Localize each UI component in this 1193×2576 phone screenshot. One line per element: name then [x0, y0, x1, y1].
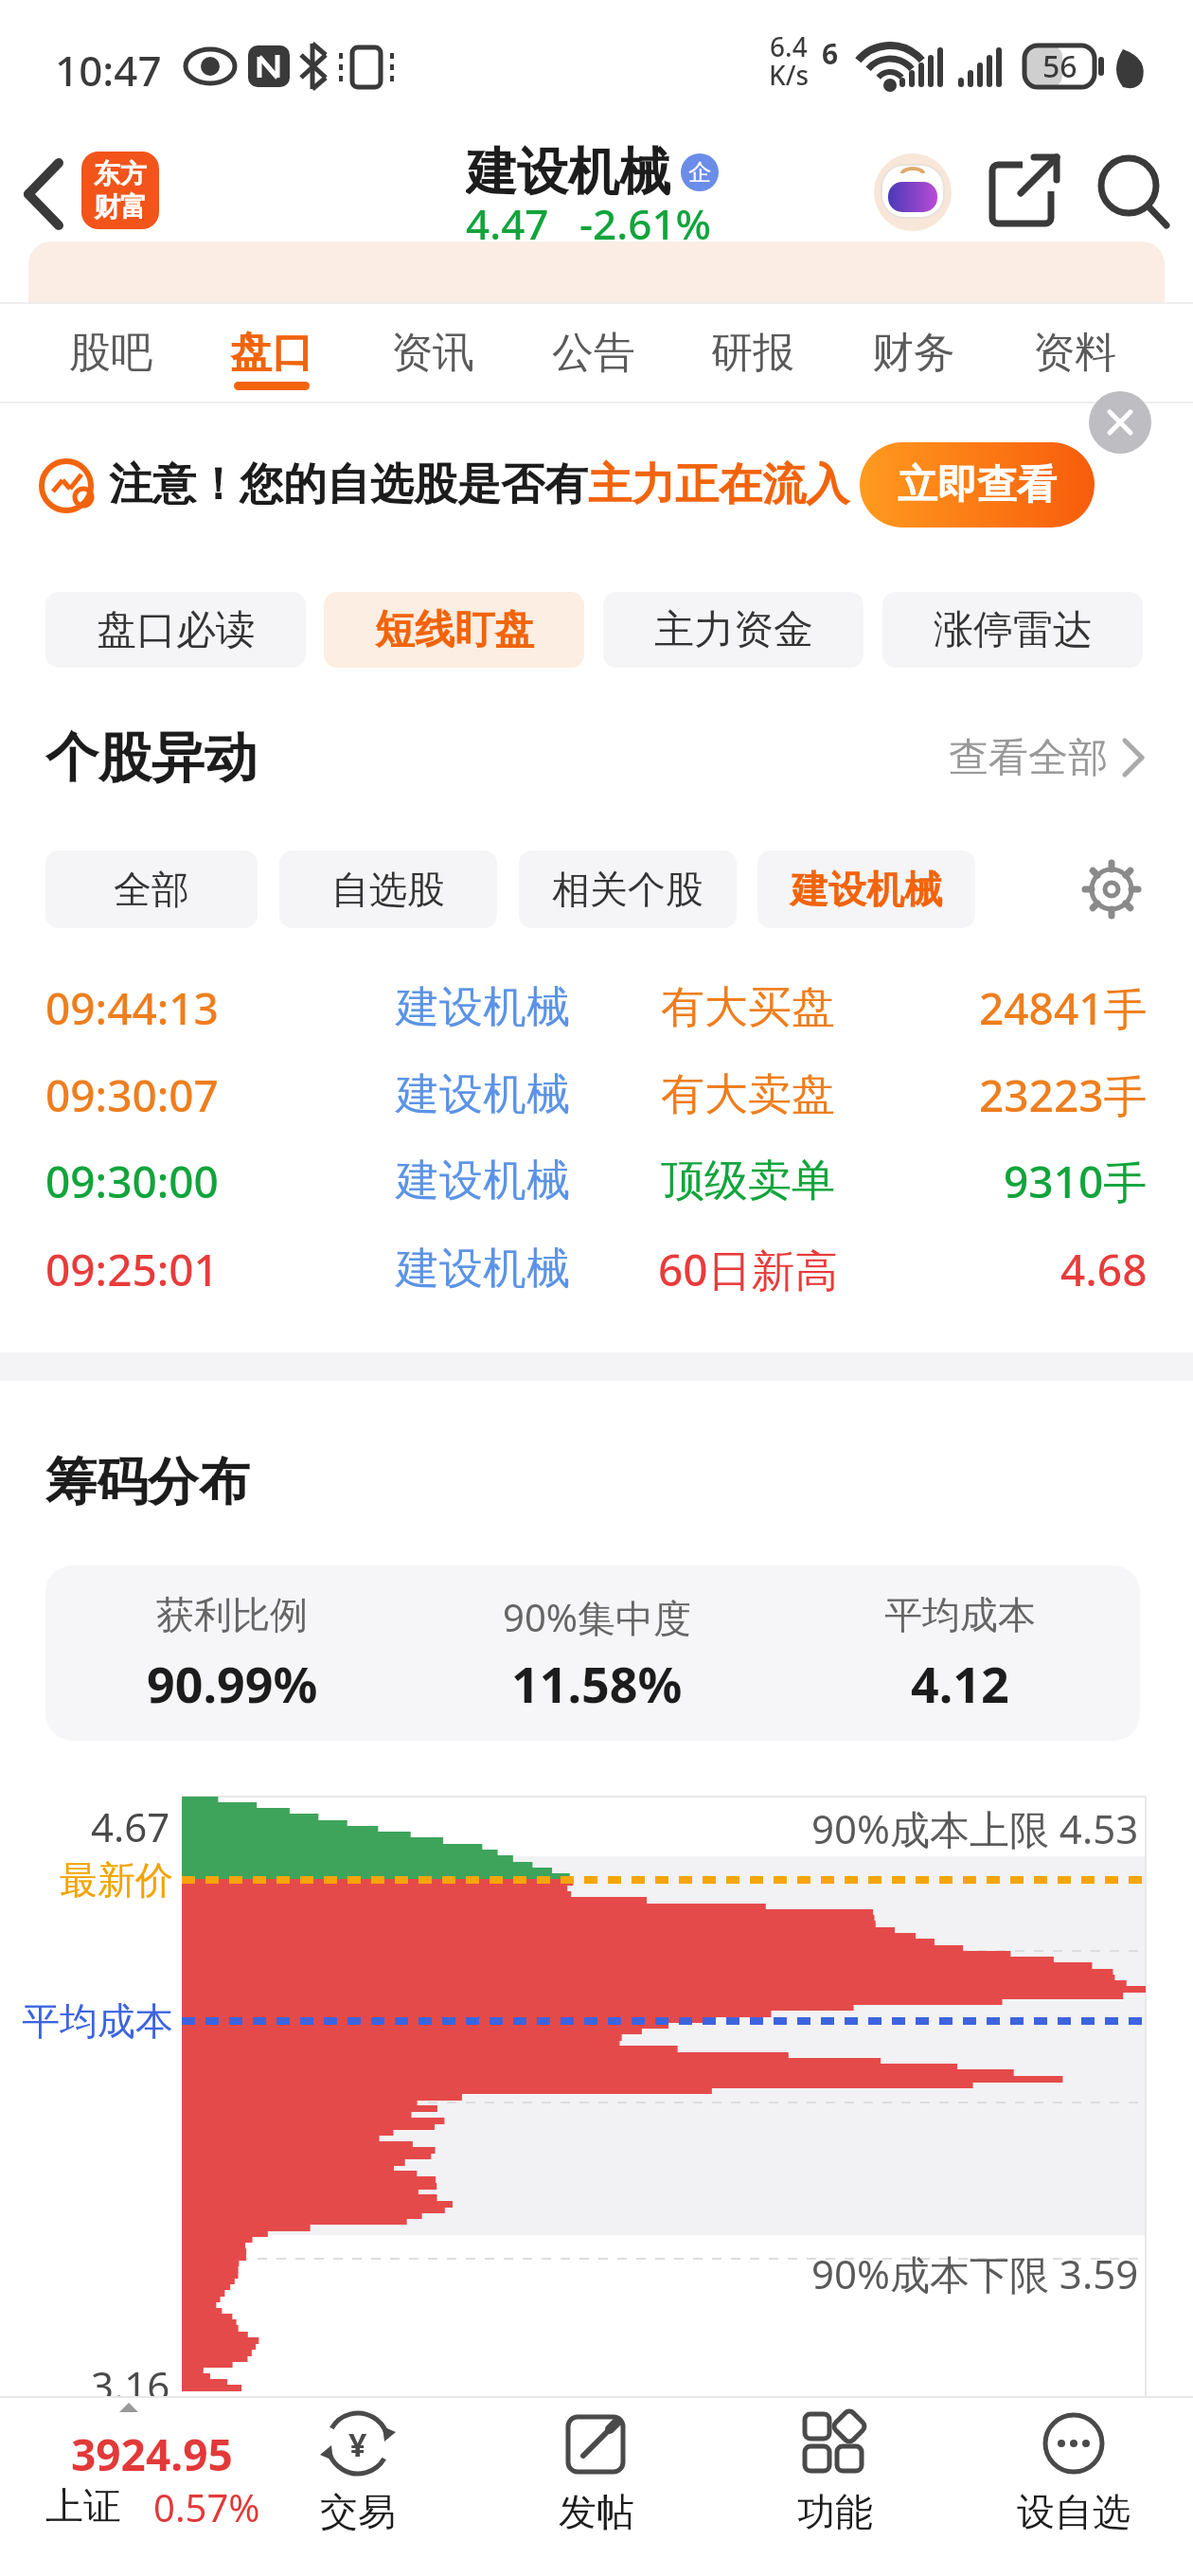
staticText: 23223手 [979, 1065, 1148, 1125]
staticText: 企 [688, 158, 711, 187]
staticText: 发帖 [559, 2488, 634, 2535]
button[interactable]: 09:44:13 [0, 976, 1193, 1039]
staticText: 设自选 [1017, 2488, 1131, 2535]
button[interactable]: 全部 [45, 850, 258, 928]
button[interactable]: 设自选 [988, 2401, 1178, 2543]
button[interactable]: 资讯 [352, 314, 513, 390]
button[interactable] [1091, 148, 1178, 237]
button[interactable]: 主力资金 [603, 592, 864, 668]
staticText: 注意！您的自选股是否有 [109, 457, 588, 512]
button[interactable]: 公告 [513, 314, 674, 390]
staticText: 查看全部 [949, 733, 1108, 783]
button[interactable]: 09:30:07 [0, 1064, 1193, 1126]
staticText: 获利比例 [156, 1591, 308, 1638]
staticText: 公告 [552, 327, 635, 379]
staticText: 3924.95 [71, 2424, 233, 2478]
staticText: 资料 [1033, 327, 1116, 379]
staticText: 24841手 [979, 978, 1148, 1038]
staticText: 90.99% [147, 1650, 318, 1710]
button[interactable]: 短线盯盘 [324, 592, 584, 668]
staticText: 90%成本上限 4.53 [811, 1801, 1139, 1851]
button[interactable] [13, 142, 78, 246]
staticText: 财务 [872, 327, 955, 379]
staticText: 短线盯盘 [375, 605, 534, 655]
staticText: 建设机械 [791, 866, 942, 913]
staticText: 有大卖盘 [661, 1067, 835, 1122]
staticText: ¥ [348, 2423, 367, 2466]
staticText: 09:30:00 [45, 1152, 219, 1211]
button[interactable]: 相关个股 [519, 850, 737, 928]
staticText: 4.67 [91, 1799, 170, 1849]
staticText: 最新价 [60, 1856, 173, 1904]
button[interactable]: 涨停雷达 [882, 592, 1143, 668]
staticText: 全部 [114, 866, 189, 913]
staticText: 6.4 [770, 28, 808, 61]
staticText: 个股异动 [45, 724, 258, 791]
button[interactable]: 发帖 [511, 2401, 682, 2543]
button[interactable]: 资料 [994, 314, 1155, 390]
staticText: -2.61% [579, 195, 712, 244]
button[interactable] [1089, 391, 1151, 454]
staticText: 顶级卖单 [661, 1154, 835, 1208]
staticText: 上证 [45, 2482, 121, 2530]
staticText: 盘口必读 [97, 605, 256, 655]
staticText: 主力资金 [654, 605, 813, 655]
staticText: 股吧 [69, 327, 152, 379]
staticText: 4.12 [911, 1650, 1009, 1710]
staticText: 0.57% [153, 2481, 260, 2531]
button[interactable]: 自选股 [279, 850, 497, 928]
button[interactable] [1079, 857, 1144, 921]
staticText: 功能 [797, 2488, 873, 2535]
staticText: 建设机械 [396, 980, 570, 1035]
staticText: 立即查看 [898, 460, 1057, 510]
button[interactable]: 研报 [672, 314, 833, 390]
staticText: 9310手 [1004, 1152, 1148, 1211]
staticText: 建设机械 [396, 1067, 570, 1122]
staticText: 相关个股 [552, 866, 703, 913]
button[interactable]: 盘口 [191, 314, 352, 390]
staticText: 财富 [94, 190, 147, 224]
button[interactable]: 盘口必读 [45, 592, 306, 668]
staticText: 56 [1042, 45, 1077, 87]
staticText: 60日新高 [658, 1240, 839, 1299]
staticText: 10:47 [55, 42, 162, 91]
staticText: 主力正在流入 [588, 457, 849, 512]
button[interactable]: 股吧 [30, 314, 191, 390]
staticText: 平均成本 [22, 1997, 173, 2045]
staticText: 4.47 [466, 195, 549, 244]
staticText: 90%集中度 [503, 1591, 691, 1638]
staticText: 4.68 [1060, 1240, 1148, 1299]
button[interactable]: 3924.95 [19, 2401, 275, 2543]
button[interactable] [985, 153, 1064, 231]
button[interactable]: 查看全部 [890, 729, 1108, 786]
button[interactable]: 09:25:01 [0, 1238, 1193, 1300]
staticText: 6 [822, 34, 839, 66]
button[interactable]: 功能 [750, 2401, 920, 2543]
button[interactable]: 建设机械 [757, 850, 975, 928]
button[interactable]: 09:30:00 [0, 1150, 1193, 1212]
staticText: 资讯 [391, 327, 474, 379]
staticText: 平均成本 [884, 1591, 1036, 1638]
button[interactable]: ¥ [273, 2401, 443, 2543]
staticText: 盘口 [230, 327, 313, 379]
staticText: 有大买盘 [661, 980, 835, 1035]
staticText: 自选股 [331, 866, 445, 913]
button[interactable]: 东方 [81, 152, 159, 229]
staticText: K/s [769, 57, 810, 89]
staticText: 3.16 [91, 2358, 170, 2407]
staticText: 09:25:01 [45, 1240, 219, 1299]
staticText: 东方 [94, 157, 147, 190]
staticText: 建设机械 [396, 1242, 570, 1297]
button[interactable]: 财务 [833, 314, 994, 390]
button[interactable] [874, 153, 952, 231]
staticText: 11.58% [511, 1650, 683, 1710]
staticText: 90%成本下限 3.59 [811, 2246, 1139, 2296]
staticText: 建设机械 [396, 1154, 570, 1208]
staticText: 建设机械 [466, 140, 670, 203]
staticText: 筹码分布 [45, 1450, 250, 1514]
button[interactable]: 立即查看 [860, 442, 1095, 528]
staticText: 09:30:07 [45, 1065, 219, 1125]
staticText: 09:44:13 [45, 978, 219, 1038]
staticText: 涨停雷达 [934, 605, 1093, 655]
staticText: 交易 [320, 2488, 396, 2535]
